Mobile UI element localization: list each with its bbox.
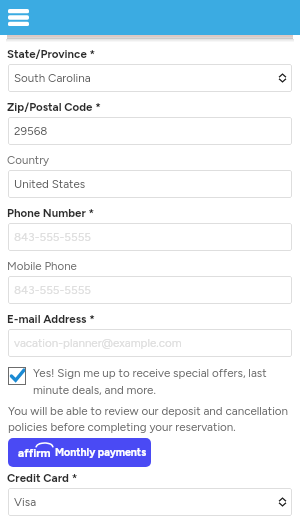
staticText: 843-555-5555 xyxy=(14,283,91,297)
button[interactable]: affirm xyxy=(8,438,151,467)
staticText: affirm xyxy=(18,446,51,460)
staticText: Zip/Postal Code * xyxy=(7,100,101,114)
staticText: vacation-planner@example.com xyxy=(14,336,182,350)
button[interactable]: United States xyxy=(8,170,292,198)
button[interactable]: vacation-planner@example.com xyxy=(8,329,292,357)
button[interactable]: Visa xyxy=(8,488,292,516)
staticText: Credit Card * xyxy=(7,471,78,485)
staticText: You will be able to review our deposit a… xyxy=(8,404,292,434)
staticText: Monthly payments xyxy=(55,446,147,459)
button[interactable]: 29568 xyxy=(8,117,292,145)
staticText: Country xyxy=(7,153,50,167)
staticText: Yes! Sign me up to receive special offer… xyxy=(33,366,292,397)
button[interactable]: 843-555-5555 xyxy=(8,223,292,251)
button[interactable]: Menu xyxy=(2,1,34,34)
button[interactable]: 843-555-5555 xyxy=(8,276,292,304)
button[interactable]: South Carolina xyxy=(8,64,292,92)
staticText: 843-555-5555 xyxy=(14,230,91,244)
button[interactable]: Yes! Sign me up to receive special offer… xyxy=(8,366,292,397)
staticText: South Carolina xyxy=(14,71,91,85)
staticText: Phone Number * xyxy=(7,206,95,220)
staticText: State/Province * xyxy=(7,47,96,61)
staticText: E-mail Address * xyxy=(7,312,95,326)
staticText: Visa xyxy=(14,495,37,509)
staticText: 29568 xyxy=(14,124,48,138)
staticText: United States xyxy=(14,177,86,191)
staticText: Mobile Phone xyxy=(7,259,77,273)
